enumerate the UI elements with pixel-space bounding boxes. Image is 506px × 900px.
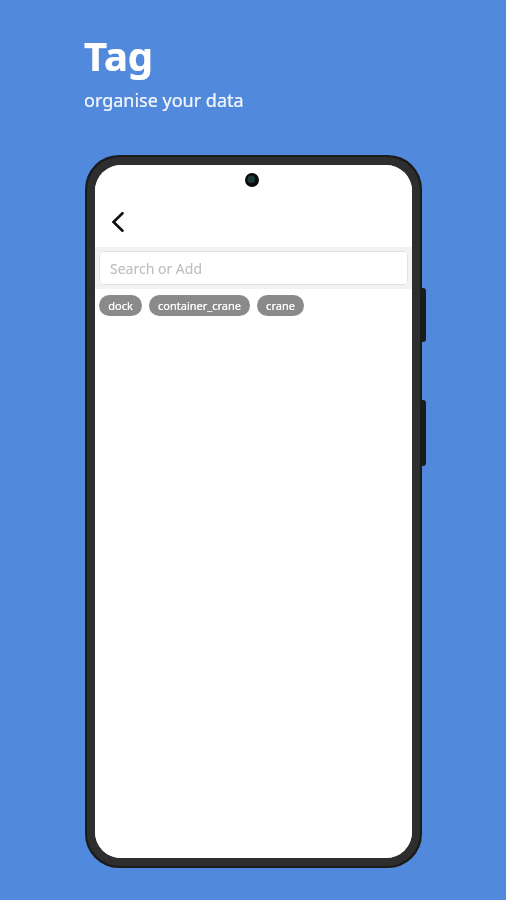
staticText: crane [266, 298, 295, 313]
staticText: container_crane [158, 298, 241, 313]
button[interactable]: dock [99, 295, 142, 316]
button[interactable]: crane [257, 295, 304, 316]
button[interactable]: Back [95, 203, 141, 241]
staticText: dock [108, 298, 133, 313]
staticText: Search or Add [110, 259, 203, 278]
button[interactable]: Search or Add [99, 251, 408, 285]
staticText: organise your data [84, 88, 244, 113]
button[interactable]: container_crane [149, 295, 250, 316]
staticText: Tag [84, 28, 154, 82]
